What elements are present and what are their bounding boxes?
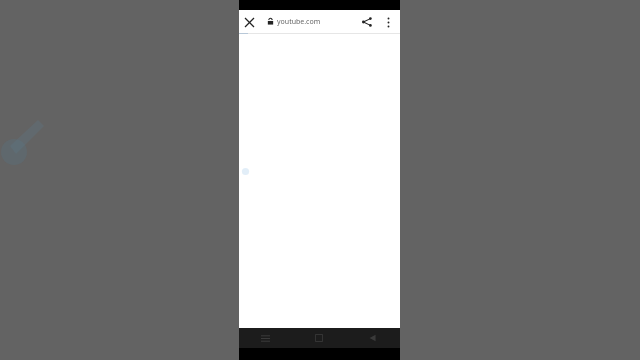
button[interactable]: youtube.com bbox=[267, 10, 356, 33]
button[interactable]: More options bbox=[378, 12, 398, 32]
button[interactable]: Recent apps bbox=[239, 328, 292, 348]
button[interactable]: Home bbox=[292, 328, 346, 348]
button[interactable]: Share bbox=[356, 11, 378, 33]
staticText: youtube.com bbox=[277, 17, 321, 27]
button[interactable]: Close bbox=[239, 12, 259, 32]
button[interactable]: Back bbox=[346, 328, 400, 348]
